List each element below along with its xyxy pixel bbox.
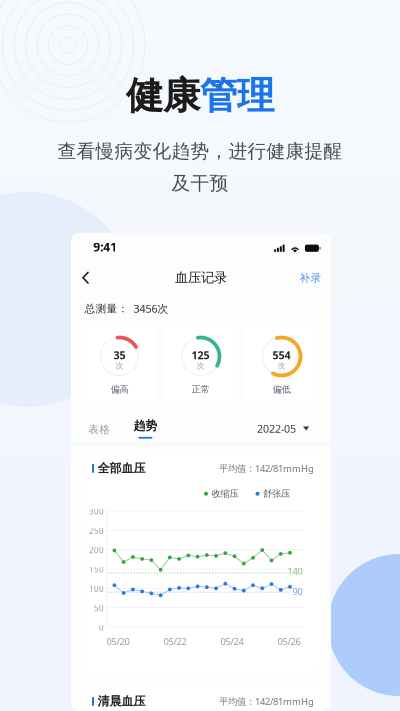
staticText: 全部血压 (97, 461, 145, 476)
staticText: 0 (99, 622, 104, 633)
staticText: 收缩压 (211, 488, 238, 499)
staticText: 100 (89, 583, 104, 594)
button[interactable]: 趋势 (128, 413, 162, 444)
staticText: 及干预 (171, 172, 228, 195)
staticText: 正常 (191, 384, 209, 395)
staticText: 偏高 (110, 384, 128, 395)
button[interactable]: 35 (82, 325, 156, 403)
staticText: 健康 (126, 73, 200, 119)
staticText: 05/22 (163, 635, 186, 648)
staticText: 趋势 (133, 418, 157, 433)
staticText: 偏低 (272, 384, 290, 395)
staticText: 9:41 (93, 239, 117, 255)
staticText: 05/26 (277, 635, 300, 648)
button[interactable]: 表格 (84, 416, 114, 443)
staticText: 管理 (200, 73, 274, 119)
staticText: 2022-05 (257, 421, 296, 436)
staticText: 平均值：142/81mmHg (219, 462, 314, 475)
staticText: 90 (292, 585, 302, 598)
staticText: 3456次 (133, 301, 168, 316)
staticText: 平均值：142/81mmHg (219, 695, 314, 708)
staticText: 125 (191, 348, 209, 362)
button[interactable]: 返回 (76, 264, 95, 291)
staticText: 总测量： (84, 302, 128, 315)
button[interactable]: 554 (244, 325, 318, 403)
staticText: 血压记录 (175, 269, 227, 286)
staticText: 05/20 (106, 635, 129, 648)
staticText: 150 (89, 564, 104, 575)
button[interactable]: 补录 (292, 264, 328, 292)
button[interactable]: 2022-05 (257, 415, 310, 442)
staticText: 补录 (299, 271, 321, 285)
staticText: 次 (196, 361, 204, 371)
staticText: 50 (94, 603, 104, 613)
staticText: 200 (89, 545, 104, 555)
staticText: 140 (287, 565, 302, 577)
staticText: 查看慢病变化趋势，进行健康提醒 (57, 140, 342, 163)
staticText: 250 (89, 525, 104, 536)
staticText: 次 (115, 361, 123, 371)
staticText: 300 (89, 506, 104, 517)
staticText: 清晨血压 (97, 694, 145, 709)
staticText: 05/24 (220, 635, 243, 648)
staticText: 35 (113, 348, 125, 362)
staticText: 次 (277, 361, 285, 371)
staticText: 舒张压 (263, 488, 290, 499)
button[interactable]: 125 (163, 325, 237, 403)
staticText: 554 (272, 348, 290, 362)
staticText: 表格 (88, 423, 110, 436)
